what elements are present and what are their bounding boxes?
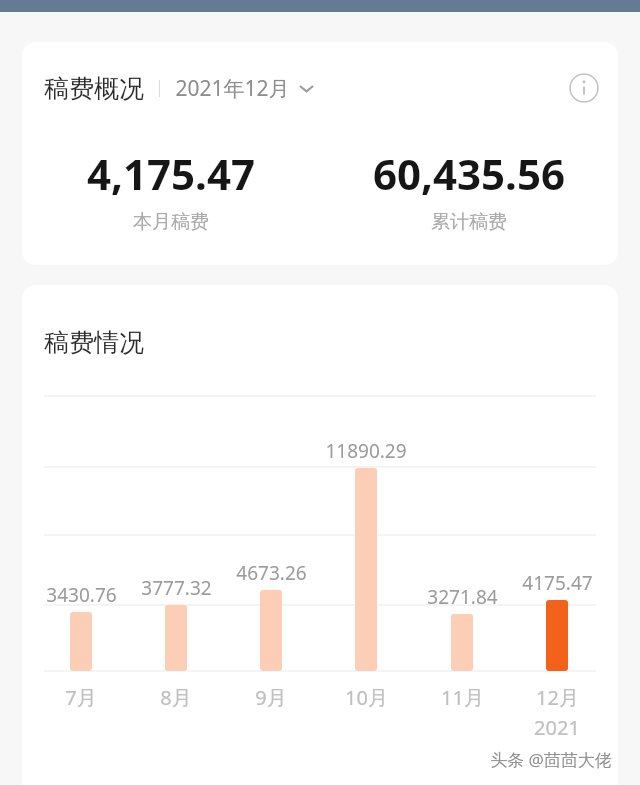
staticText: 累计稿费 (431, 210, 507, 234)
staticText: 本月稿费 (133, 210, 209, 234)
button[interactable]: Information (566, 70, 602, 106)
staticText: 2021 (534, 714, 580, 741)
staticText: 4673.26 (236, 560, 307, 586)
staticText: 8月 (160, 684, 192, 711)
staticText: 7月 (65, 684, 97, 711)
staticText: 头条 @茴茴大佬 (490, 748, 612, 771)
staticText: 9月 (255, 684, 287, 711)
staticText: 3777.32 (141, 575, 212, 601)
staticText: 11890.29 (325, 438, 407, 464)
staticText: 2021年12月 (175, 74, 290, 103)
button[interactable]: 2021年12月 (175, 74, 314, 103)
staticText: 10月 (345, 684, 388, 711)
staticText: 稿费情况 (44, 327, 144, 358)
staticText: 60,435.56 (373, 145, 565, 202)
staticText: 4175.47 (522, 570, 593, 596)
staticText: 稿费概况 (44, 73, 144, 104)
staticText: 3271.84 (427, 584, 498, 610)
staticText: 3430.76 (46, 582, 117, 608)
staticText: 4,175.47 (87, 145, 255, 202)
staticText: 12月 (536, 684, 579, 711)
staticText: 11月 (441, 684, 484, 711)
